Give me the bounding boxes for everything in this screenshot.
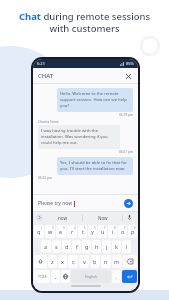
staticText: r	[71, 228, 74, 235]
button[interactable]: x	[58, 255, 67, 268]
staticText: v	[83, 258, 86, 265]
staticText: 8	[114, 226, 116, 230]
button[interactable]: h	[92, 240, 101, 253]
staticText: u	[101, 228, 105, 235]
button[interactable]: Shift	[34, 255, 47, 268]
button[interactable]: c	[68, 255, 78, 268]
staticText: a	[44, 243, 48, 250]
staticText: p	[131, 228, 135, 235]
staticText: .	[116, 273, 118, 280]
staticText: 0	[134, 226, 136, 230]
staticText: w	[48, 228, 53, 235]
button[interactable]: 7	[98, 225, 107, 238]
staticText: 1	[41, 226, 43, 230]
staticText: Yes, I should be able to fix that for yo…	[60, 160, 130, 172]
staticText: z	[51, 258, 54, 265]
button[interactable]: n	[101, 255, 111, 268]
staticText: s	[55, 243, 58, 250]
button[interactable]: Close chat	[123, 71, 133, 81]
staticText: 7	[104, 226, 106, 230]
button[interactable]: 2	[45, 225, 55, 238]
staticText: g	[85, 243, 89, 250]
button[interactable]: ,	[51, 270, 60, 283]
staticText: n	[104, 258, 108, 265]
button[interactable]: Now	[83, 215, 122, 221]
button[interactable]: 9	[118, 225, 127, 238]
button[interactable]: v	[79, 255, 89, 268]
button[interactable]: j	[102, 240, 111, 253]
button[interactable]: l	[122, 240, 131, 253]
staticText: h	[95, 243, 99, 250]
button[interactable]: Change language	[61, 270, 70, 283]
staticText: q	[37, 228, 41, 235]
staticText: ?123	[38, 274, 47, 279]
staticText: 6:21	[37, 61, 45, 66]
button[interactable]: now	[43, 215, 82, 221]
staticText: 4	[74, 226, 76, 230]
staticText: CHAT	[38, 72, 54, 80]
button[interactable]: Voice input	[123, 212, 135, 223]
button[interactable]: Hello. Welcome to the remote support ses…	[57, 88, 133, 112]
button[interactable]: z	[48, 255, 57, 268]
button[interactable]: 1	[34, 225, 44, 238]
staticText: now	[58, 215, 67, 221]
staticText: y	[91, 228, 94, 235]
staticText: f	[76, 243, 78, 250]
button[interactable]: ?123	[34, 270, 50, 283]
staticText: Chat during remote sessions with custome…	[10, 10, 159, 35]
button[interactable]: Space	[71, 270, 111, 283]
button[interactable]: m	[112, 255, 122, 268]
button[interactable]: Backspace	[123, 255, 137, 268]
staticText: e	[59, 228, 63, 235]
staticText: ,	[55, 273, 57, 280]
staticText: 3	[63, 226, 65, 230]
button[interactable]: 4	[67, 225, 77, 238]
button[interactable]: k	[112, 240, 121, 253]
button[interactable]: 5	[78, 225, 87, 238]
staticText: English	[85, 274, 97, 279]
staticText: c	[72, 258, 75, 265]
staticText: x	[61, 258, 64, 265]
button[interactable]: f	[72, 240, 81, 253]
staticText: 9	[124, 226, 126, 230]
staticText: 06:21 pm	[119, 150, 133, 154]
staticText: m	[114, 258, 120, 265]
staticText: 5	[84, 226, 86, 230]
button[interactable]: Enter	[122, 270, 137, 283]
staticText: Now	[98, 215, 108, 221]
staticText: Hello. Welcome to the remote support ses…	[60, 91, 130, 109]
staticText: 85%	[126, 61, 134, 66]
button[interactable]: 0	[128, 225, 137, 238]
staticText: Please try now	[38, 200, 73, 207]
button[interactable]: g	[82, 240, 91, 253]
staticText: I was having trouble with the installati…	[41, 128, 117, 146]
staticText: t	[82, 228, 84, 235]
button[interactable]: More suggestions	[36, 214, 43, 221]
button[interactable]: b	[90, 255, 100, 268]
staticText: 06:19 pm	[119, 113, 133, 117]
staticText: d	[65, 243, 69, 250]
button[interactable]: a	[41, 240, 51, 253]
staticText: l	[126, 243, 128, 250]
button[interactable]: .	[112, 270, 121, 283]
staticText: k	[115, 243, 118, 250]
button[interactable]: I was having trouble with the installati…	[38, 125, 120, 149]
button[interactable]: 8	[108, 225, 117, 238]
button[interactable]: 6	[88, 225, 97, 238]
staticText: 2	[52, 226, 54, 230]
staticText: o	[121, 228, 125, 235]
staticText: b	[93, 258, 97, 265]
staticText: Charles Stone	[38, 120, 59, 124]
button[interactable]: d	[62, 240, 71, 253]
button[interactable]: Yes, I should be able to fix that for yo…	[57, 157, 133, 175]
button[interactable]: 3	[56, 225, 66, 238]
staticText: i	[112, 228, 114, 235]
staticText: j	[106, 243, 108, 250]
button[interactable]: Send message	[124, 199, 133, 208]
staticText: 06:23 pm	[38, 176, 52, 180]
staticText: 6	[94, 226, 96, 230]
button[interactable]: Please try now	[38, 200, 124, 207]
button[interactable]: s	[52, 240, 61, 253]
